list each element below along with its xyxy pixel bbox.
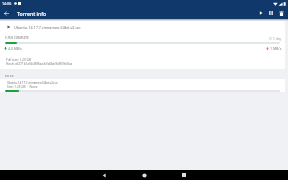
staticText: Hash: af271b1a5b38f5aa3cfa0bb9c8f09c6ba bbox=[6, 62, 73, 66]
staticText: 14:06 bbox=[2, 1, 12, 6]
staticText: FILES bbox=[5, 74, 14, 77]
button[interactable]: Back bbox=[84, 170, 124, 180]
staticText: Torrent info bbox=[17, 10, 47, 17]
button[interactable]: Home bbox=[124, 170, 164, 180]
staticText: 1 day bbox=[273, 36, 282, 40]
button[interactable]: Ubuntu-14.17.7-cinnamon-64bit-v2.iso bbox=[0, 79, 285, 92]
button[interactable]: Recents bbox=[164, 170, 204, 180]
button[interactable]: Back bbox=[0, 7, 12, 19]
staticText: 5.76% COMPLETE bbox=[5, 36, 29, 40]
staticText: Ubuntu-14.17.7-cinnamon-64bit-v2.iso bbox=[14, 25, 81, 30]
staticText: Size: 1.25 GB · None bbox=[7, 85, 38, 89]
staticText: Full size: 1.25 GB bbox=[6, 58, 31, 62]
staticText: Ubuntu-14.17.7-cinnamon-64bit-v2.iso bbox=[7, 81, 58, 85]
button[interactable]: Pause bbox=[266, 7, 276, 19]
staticText: 1 MB/s bbox=[270, 46, 282, 51]
button[interactable]: Delete bbox=[276, 7, 286, 19]
staticText: 4.4 MB/s bbox=[8, 46, 22, 51]
button[interactable]: Resume bbox=[256, 7, 266, 19]
